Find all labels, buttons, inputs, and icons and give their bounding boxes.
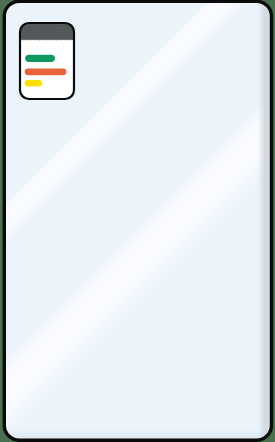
button[interactable]: Open task list: [20, 23, 74, 99]
